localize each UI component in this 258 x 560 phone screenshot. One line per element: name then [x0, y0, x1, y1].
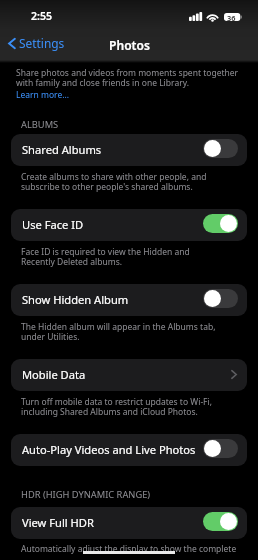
- staticText: Photos: [109, 37, 150, 53]
- staticText: Face ID is required to view the Hidden a…: [21, 246, 190, 268]
- button[interactable]: View Full HDR: [11, 507, 247, 539]
- button[interactable]: Learn more...: [16, 89, 70, 101]
- staticText: Use Face ID: [22, 217, 203, 232]
- staticText: Create albums to share with other people…: [21, 171, 207, 193]
- button[interactable]: Mobile Data: [11, 359, 247, 391]
- staticText: 36: [227, 13, 236, 21]
- staticText: ALBUMS: [21, 118, 59, 131]
- staticText: Settings: [19, 35, 65, 51]
- staticText: Auto-Play Videos and Live Photos: [22, 442, 203, 457]
- staticText: Turn off mobile data to restrict updates…: [21, 396, 212, 418]
- staticText: HDR (HIGH DYNAMIC RANGE): [21, 488, 151, 501]
- staticText: Share photos and videos from moments spe…: [16, 67, 239, 89]
- staticText: The Hidden album will appear in the Albu…: [21, 321, 216, 343]
- staticText: Show Hidden Album: [22, 292, 203, 307]
- staticText: 2:55: [31, 9, 53, 23]
- staticText: Mobile Data: [22, 367, 229, 382]
- staticText: Automatically adjust the display to show…: [21, 543, 237, 555]
- staticText: Shared Albums: [22, 142, 203, 157]
- button[interactable]: Shared Albums: [11, 134, 247, 166]
- button[interactable]: Show Hidden Album: [11, 284, 247, 316]
- button[interactable]: Auto-Play Videos and Live Photos: [11, 434, 247, 466]
- staticText: View Full HDR: [22, 515, 203, 530]
- other: Open Mobile Data: [231, 370, 237, 379]
- button[interactable]: Settings: [6, 34, 67, 52]
- button[interactable]: Use Face ID: [11, 209, 247, 241]
